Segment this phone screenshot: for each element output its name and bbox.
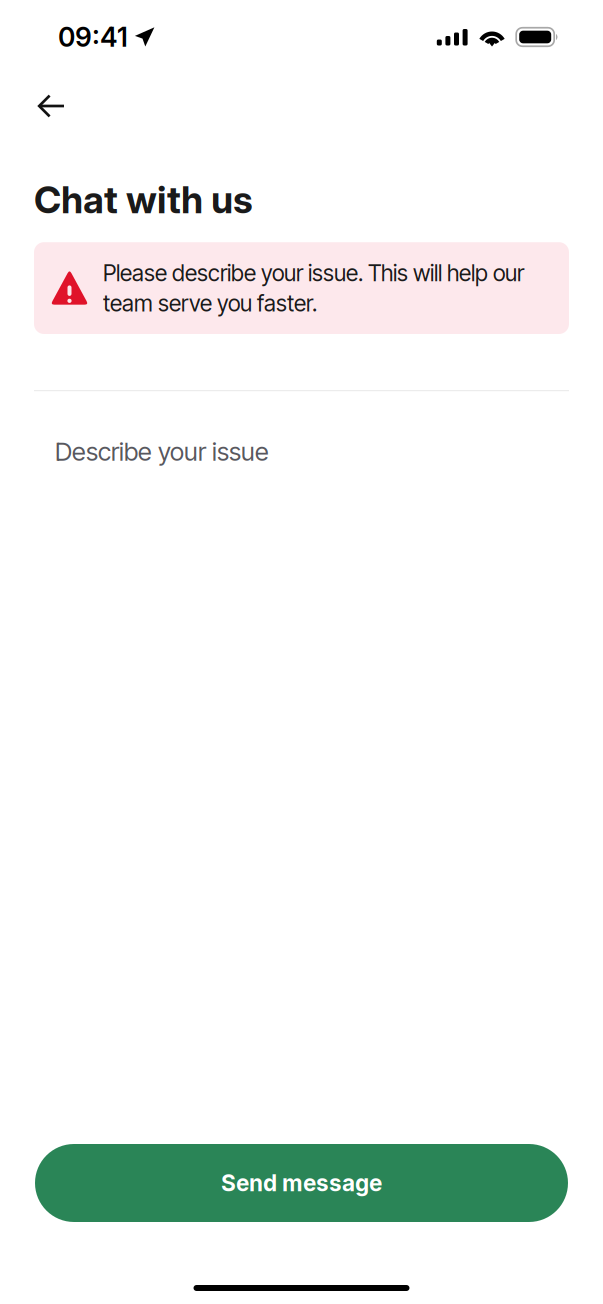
staticText: Describe your issue (55, 436, 269, 467)
staticText: 09:41 (58, 21, 128, 53)
button[interactable]: Describe your issue (0, 391, 603, 467)
staticText: Send message (221, 1169, 382, 1197)
button[interactable]: Back (29, 85, 74, 127)
staticText: Please describe your issue. This will he… (103, 259, 524, 317)
staticText: Chat with us (34, 177, 253, 222)
button[interactable]: Send message (35, 1144, 568, 1222)
